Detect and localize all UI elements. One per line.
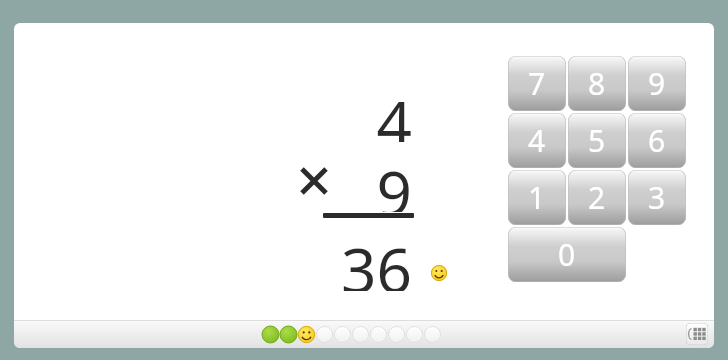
staticText: 9 — [648, 63, 666, 104]
button[interactable]: 0 — [508, 227, 626, 282]
staticText: 36 — [341, 227, 412, 291]
staticText: 6 — [648, 120, 666, 161]
button[interactable]: 3 — [628, 170, 686, 225]
staticText: 4 — [528, 120, 546, 161]
staticText: 7 — [528, 63, 546, 104]
staticText: 2 — [588, 177, 606, 218]
staticText: 3 — [648, 177, 666, 218]
staticText: 5 — [588, 120, 606, 161]
staticText: 9 — [376, 150, 412, 212]
staticText: 4 — [376, 80, 412, 142]
button[interactable]: 1 — [508, 170, 566, 225]
button[interactable]: 4 — [508, 113, 566, 168]
button[interactable]: 5 — [568, 113, 626, 168]
button[interactable]: 9 — [628, 56, 686, 111]
button[interactable]: 2 — [568, 170, 626, 225]
button[interactable]: 7 — [508, 56, 566, 111]
button[interactable]: 6 — [628, 113, 686, 168]
button[interactable]: Toggle keypad — [686, 323, 708, 345]
button[interactable]: 8 — [568, 56, 626, 111]
staticText: 0 — [558, 234, 576, 275]
staticText: 1 — [528, 177, 546, 218]
staticText: 8 — [588, 63, 606, 104]
